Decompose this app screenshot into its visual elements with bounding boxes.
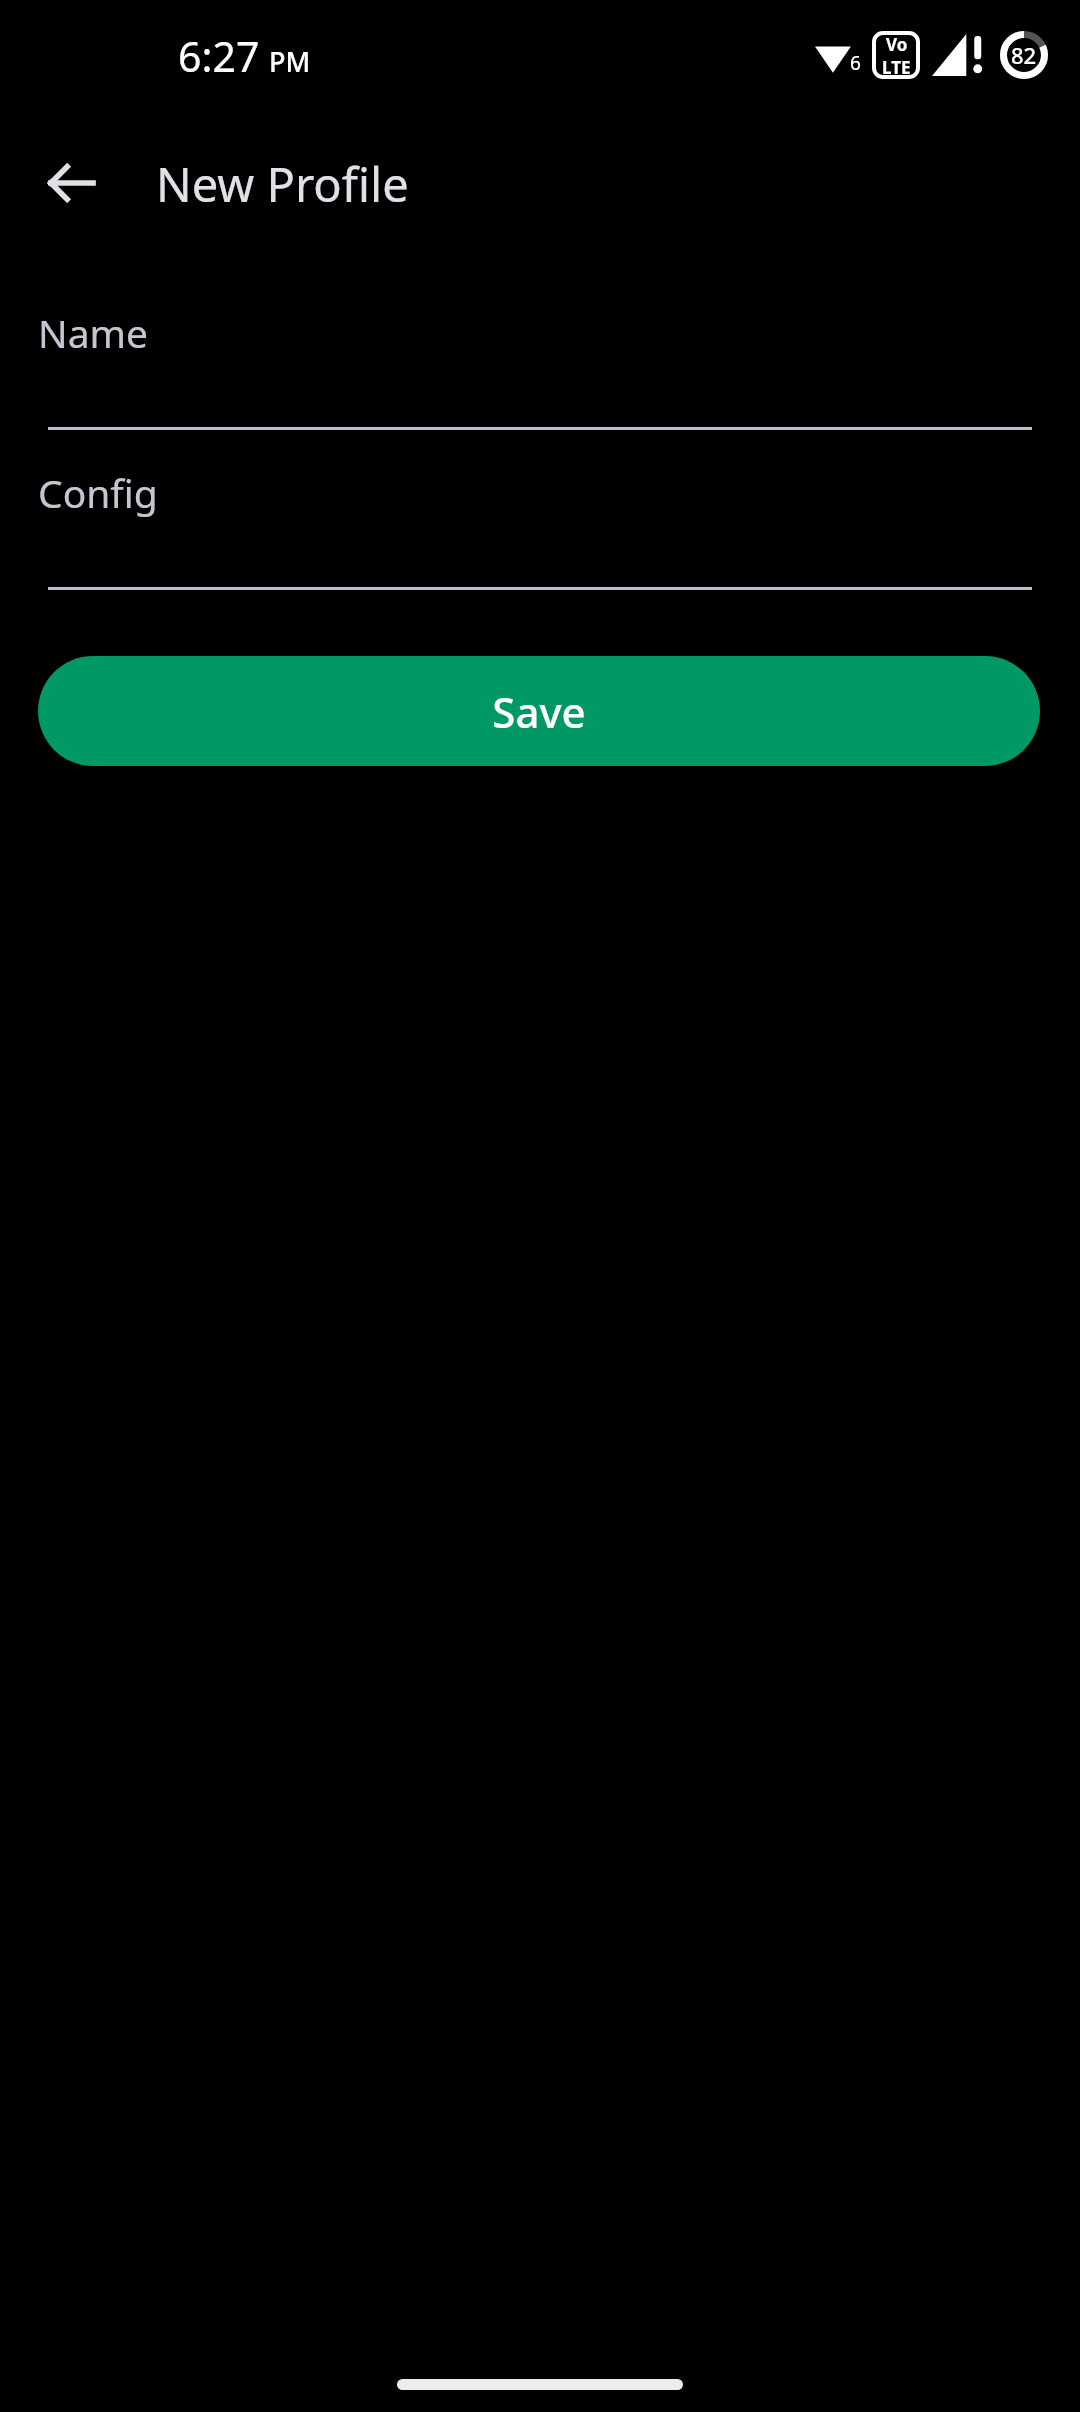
staticText: 6:27 <box>178 28 260 84</box>
button[interactable]: Back <box>24 135 120 231</box>
staticText: 6 <box>850 50 861 76</box>
staticText: New Profile <box>156 152 409 216</box>
button[interactable]: Config <box>0 466 1080 590</box>
staticText: Config <box>38 466 158 519</box>
staticText: Save <box>492 683 586 740</box>
staticText: Name <box>38 306 148 359</box>
button[interactable]: Save <box>38 656 1040 766</box>
staticText: LTE <box>882 56 911 77</box>
staticText: 82 <box>1011 40 1037 70</box>
staticText: Vo <box>886 33 908 56</box>
button[interactable]: Name <box>0 306 1080 430</box>
staticText: PM <box>269 43 311 80</box>
